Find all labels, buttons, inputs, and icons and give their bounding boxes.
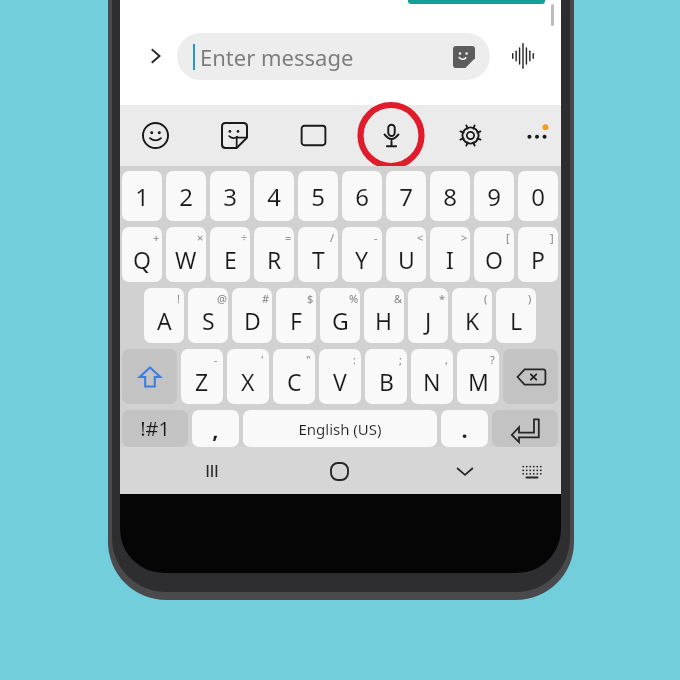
staticText: F <box>290 305 302 336</box>
button[interactable]: Stickers <box>213 114 255 156</box>
staticText: 3 <box>223 180 237 213</box>
staticText: S <box>202 305 215 336</box>
staticText: R <box>267 244 282 275</box>
staticText: 8 <box>443 180 457 213</box>
button[interactable]: 5 <box>298 171 338 221</box>
button[interactable]: - <box>181 349 223 404</box>
staticText: > <box>461 230 468 245</box>
button[interactable]: 2 <box>166 171 206 221</box>
button[interactable]: 4 <box>254 171 294 221</box>
button[interactable]: [ <box>474 227 514 282</box>
staticText: 9 <box>487 180 501 213</box>
button[interactable]: 0 <box>518 171 558 221</box>
button[interactable]: - <box>342 227 382 282</box>
button[interactable]: ! <box>144 288 184 343</box>
staticText: * <box>439 291 446 306</box>
button[interactable]: % <box>320 288 360 343</box>
button[interactable]: ) <box>496 288 536 343</box>
staticText: : <box>353 352 356 367</box>
staticText: J <box>425 305 432 336</box>
staticText: , <box>445 352 448 367</box>
button[interactable]: Show more options <box>136 36 176 76</box>
staticText: V <box>333 366 347 397</box>
button[interactable]: English (US) <box>243 410 437 447</box>
button[interactable]: 6 <box>342 171 382 221</box>
staticText: , <box>212 414 219 444</box>
staticText: 4 <box>267 180 281 213</box>
button[interactable]: # <box>232 288 272 343</box>
staticText: X <box>241 366 255 397</box>
staticText: / <box>330 230 335 245</box>
button[interactable]: $ <box>276 288 316 343</box>
button[interactable]: 9 <box>474 171 514 221</box>
button[interactable]: Keyboard settings <box>449 114 491 156</box>
button[interactable]: !#1 <box>122 410 188 447</box>
staticText: N <box>423 366 441 397</box>
staticText: & <box>394 291 403 306</box>
staticText: $ <box>307 291 314 306</box>
button[interactable]: & <box>364 288 404 343</box>
staticText: 7 <box>399 180 413 213</box>
staticText: 0 <box>531 180 545 213</box>
button[interactable]: GIF <box>292 114 334 156</box>
button[interactable]: Enter message <box>177 33 490 80</box>
staticText: U <box>398 244 415 275</box>
staticText: D <box>244 305 261 336</box>
staticText: H <box>375 305 393 336</box>
button[interactable]: More options <box>517 115 557 155</box>
button[interactable]: × <box>166 227 206 282</box>
button[interactable]: 3 <box>210 171 250 221</box>
button[interactable]: 7 <box>386 171 426 221</box>
staticText: ] <box>550 230 554 245</box>
button[interactable]: Hide keyboard <box>445 451 485 491</box>
staticText: ? <box>490 352 495 367</box>
staticText: Enter message <box>200 42 354 72</box>
staticText: T <box>312 244 325 275</box>
button[interactable]: Voice input <box>503 36 543 76</box>
button[interactable]: > <box>430 227 470 282</box>
button[interactable]: Keyboard <box>514 453 550 489</box>
button[interactable]: Emoji <box>134 114 176 156</box>
button[interactable]: Shift <box>122 349 177 404</box>
button[interactable]: Home <box>319 451 359 491</box>
staticText: English (US) <box>298 419 382 439</box>
staticText: G <box>332 305 349 336</box>
staticText: 1 <box>135 180 149 213</box>
button[interactable]: ( <box>452 288 492 343</box>
staticText: 2 <box>179 180 193 213</box>
staticText: [ <box>506 230 510 245</box>
button[interactable]: , <box>192 410 239 447</box>
button[interactable]: " <box>273 349 315 404</box>
button[interactable]: ' <box>227 349 269 404</box>
button[interactable]: / <box>298 227 338 282</box>
button[interactable]: , <box>411 349 453 404</box>
button[interactable]: Voice typing <box>370 114 412 156</box>
button[interactable]: ] <box>518 227 558 282</box>
button[interactable]: ; <box>365 349 407 404</box>
staticText: B <box>379 366 394 397</box>
staticText: K <box>465 305 480 336</box>
button[interactable]: = <box>254 227 294 282</box>
button[interactable]: Stickers <box>447 40 481 74</box>
staticText: × <box>197 230 204 245</box>
staticText: % <box>349 291 359 306</box>
button[interactable]: 8 <box>430 171 470 221</box>
button[interactable]: Backspace <box>503 349 558 404</box>
staticText: < <box>417 230 424 245</box>
button[interactable]: : <box>319 349 361 404</box>
button[interactable]: @ <box>188 288 228 343</box>
button[interactable]: ÷ <box>210 227 250 282</box>
button[interactable]: + <box>122 227 162 282</box>
staticText: . <box>461 414 468 444</box>
button[interactable]: Recents <box>192 451 232 491</box>
button[interactable]: Enter <box>492 410 558 447</box>
button[interactable]: ? <box>457 349 499 404</box>
button[interactable]: 1 <box>122 171 162 221</box>
staticText: = <box>285 230 292 245</box>
button[interactable]: . <box>441 410 488 447</box>
staticText: M <box>468 366 489 397</box>
button[interactable]: * <box>408 288 448 343</box>
button[interactable]: < <box>386 227 426 282</box>
staticText: Y <box>355 244 369 275</box>
staticText: ( <box>484 291 488 306</box>
